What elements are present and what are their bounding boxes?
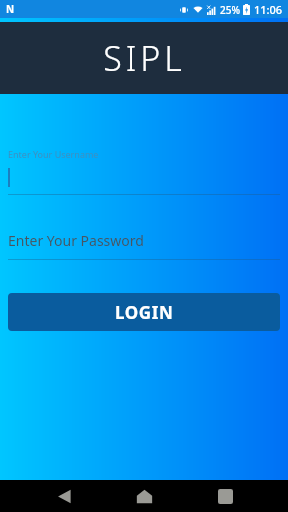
button[interactable]: Enter Your Username — [8, 148, 280, 195]
button[interactable]: Back — [47, 480, 81, 512]
staticText: LOGIN — [115, 301, 174, 324]
staticText: N — [6, 2, 15, 16]
staticText: 11:06 — [254, 2, 283, 17]
button[interactable]: Enter Your Password — [8, 231, 280, 260]
button[interactable]: LOGIN — [8, 293, 280, 331]
staticText: Enter Your Username — [8, 148, 99, 160]
staticText: SIPL — [103, 35, 186, 81]
staticText: Enter Your Password — [8, 231, 144, 250]
staticText: 25% — [220, 3, 240, 17]
button[interactable]: Recents — [208, 480, 242, 512]
button[interactable]: Home — [127, 480, 161, 512]
